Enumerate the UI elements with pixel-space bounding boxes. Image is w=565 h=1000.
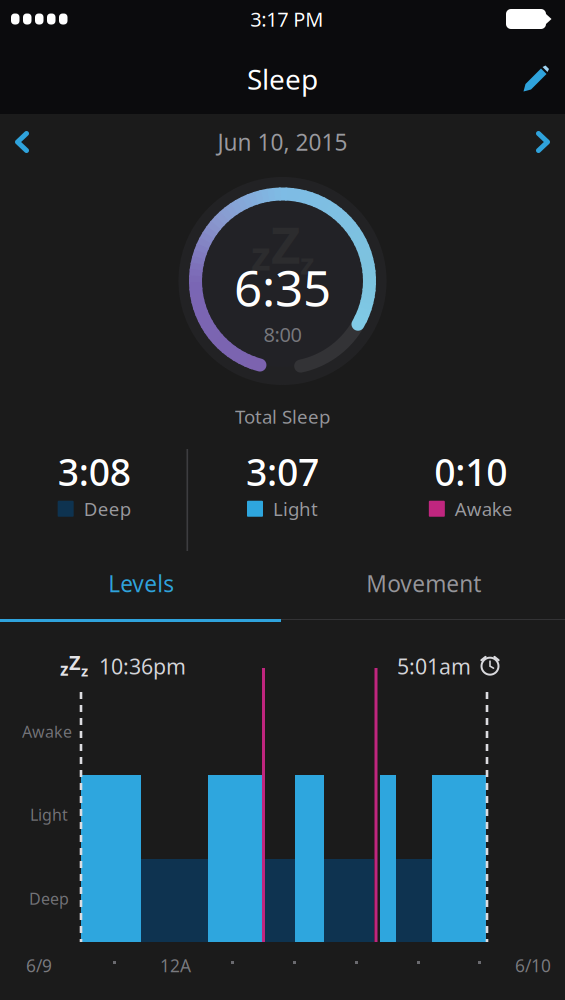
- staticText: z: [81, 661, 88, 680]
- staticText: 3:17 PM: [250, 6, 323, 32]
- staticText: Light: [273, 496, 318, 521]
- staticText: 8:00: [263, 321, 301, 348]
- button[interactable]: Edit: [506, 54, 565, 103]
- staticText: 12A: [160, 954, 191, 977]
- staticText: Awake: [455, 496, 513, 521]
- staticText: 0:10: [434, 447, 507, 496]
- staticText: 6/10: [515, 954, 551, 977]
- staticText: Movement: [366, 568, 481, 598]
- staticText: Deep: [84, 496, 131, 521]
- staticText: Z: [271, 210, 300, 278]
- staticText: z: [60, 657, 69, 680]
- staticText: 3:07: [246, 447, 319, 496]
- staticText: 3:08: [58, 447, 131, 496]
- staticText: Jun 10, 2015: [217, 127, 347, 157]
- staticText: Levels: [108, 568, 174, 598]
- button[interactable]: Movement: [282, 562, 565, 619]
- staticText: z: [251, 228, 271, 282]
- staticText: 5:01am: [397, 652, 471, 680]
- staticText: 6/9: [26, 954, 52, 977]
- staticText: z: [300, 244, 314, 283]
- staticText: Deep: [29, 888, 69, 909]
- staticText: 6:35: [234, 254, 331, 320]
- staticText: Light: [30, 804, 68, 825]
- staticText: Total Sleep: [235, 404, 330, 429]
- staticText: Sleep: [247, 60, 318, 98]
- staticText: Z: [69, 649, 81, 675]
- staticText: Awake: [22, 721, 72, 742]
- button[interactable]: Levels: [0, 562, 282, 619]
- button[interactable]: Previous day: [0, 120, 48, 164]
- button[interactable]: Next day: [517, 120, 565, 164]
- staticText: 10:36pm: [99, 652, 186, 680]
